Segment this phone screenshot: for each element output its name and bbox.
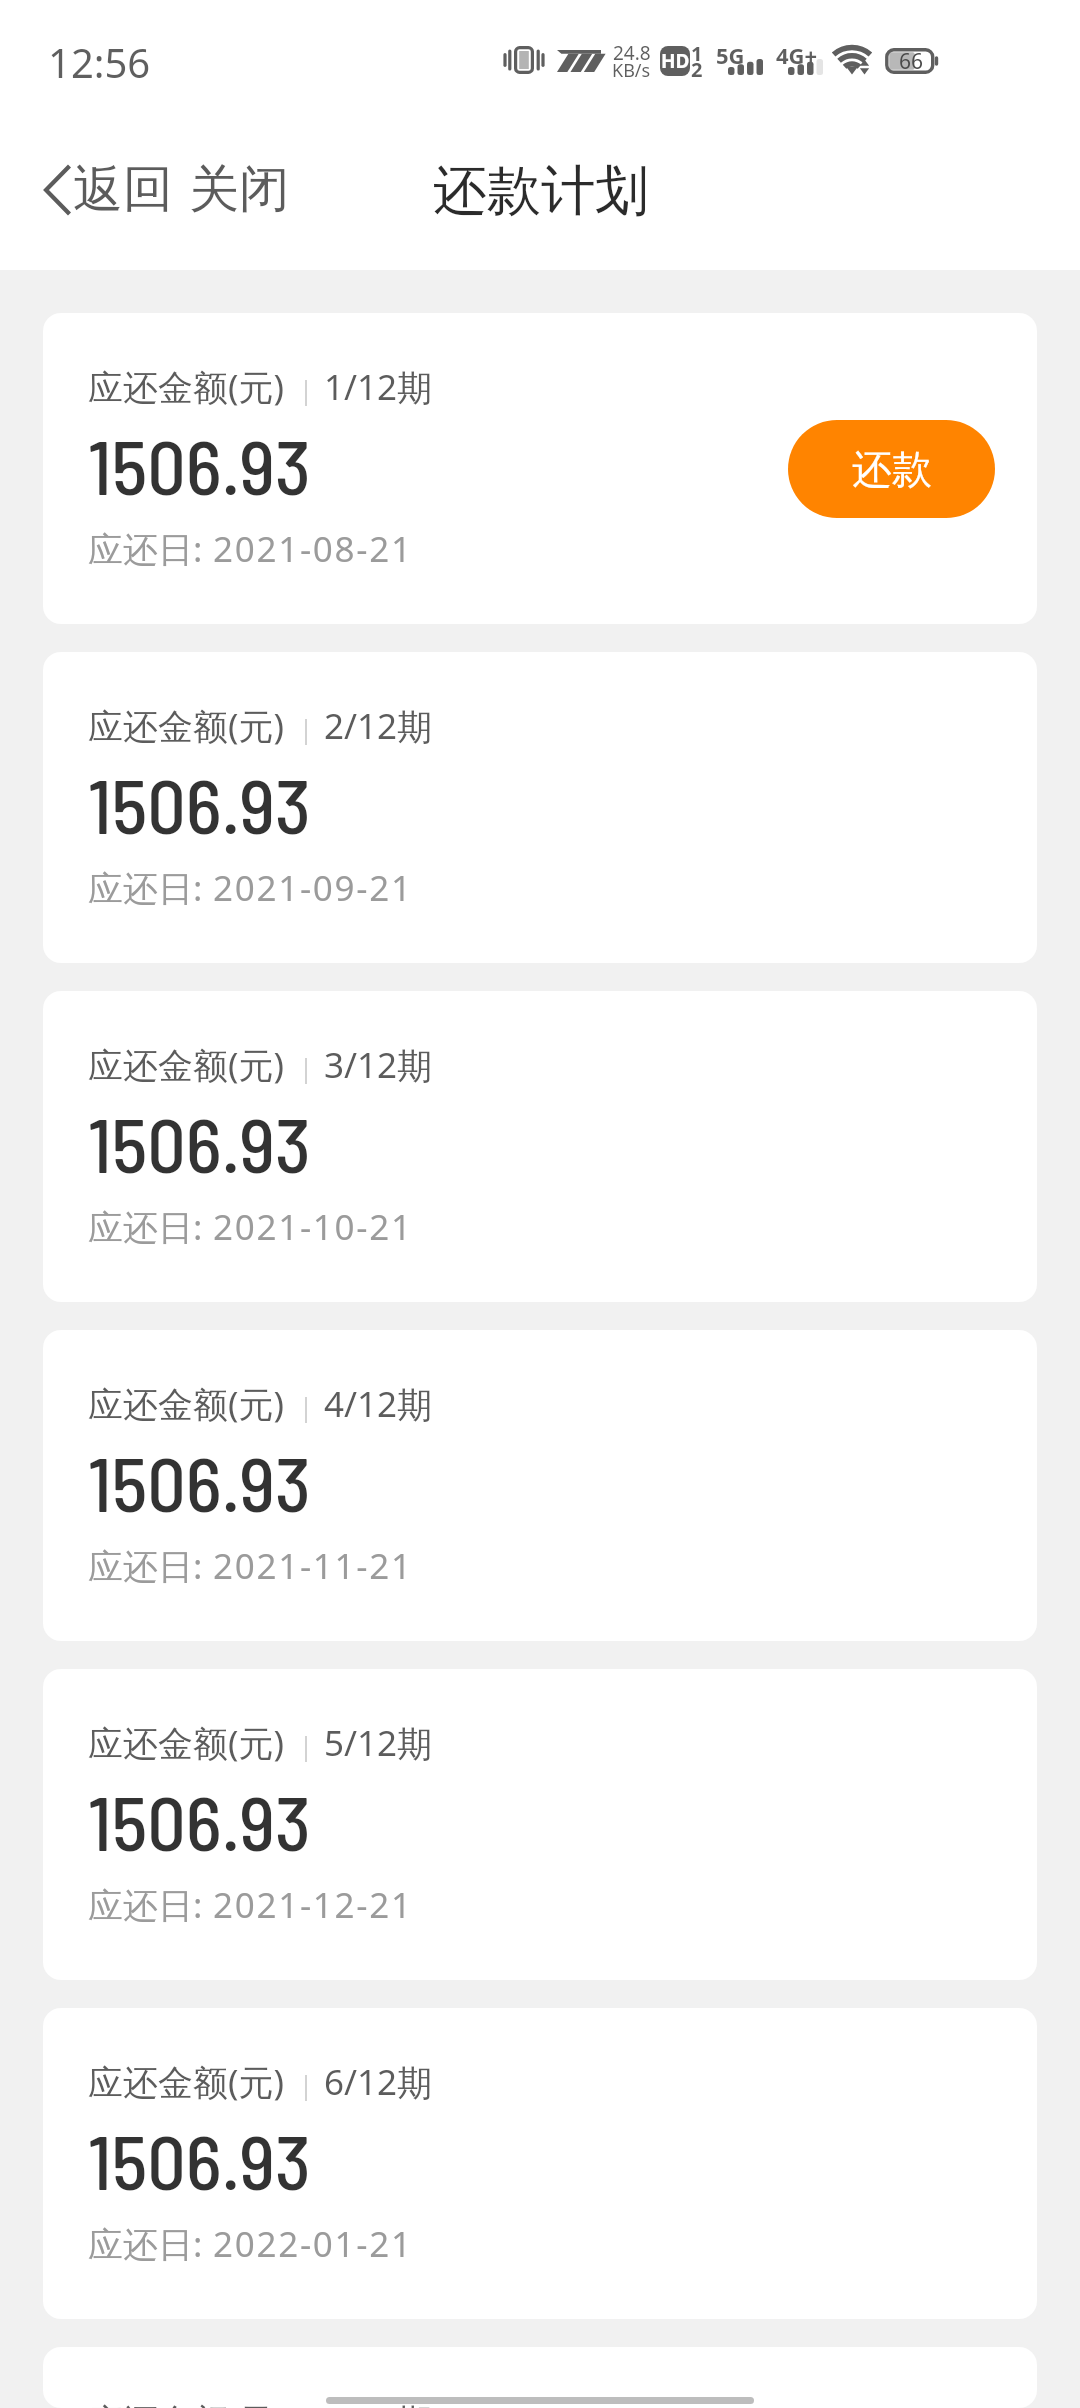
button[interactable]: 应还金额(元): [43, 2008, 1037, 2319]
staticText: 1/12期: [324, 363, 433, 411]
staticText: 2021-08-21: [213, 525, 413, 573]
staticText: 3/12期: [324, 1041, 433, 1089]
staticText: 还款: [852, 444, 932, 494]
staticText: HD: [661, 48, 690, 74]
staticText: 关闭: [189, 158, 289, 221]
button[interactable]: 应还金额(元): [43, 1330, 1037, 1641]
staticText: 1506.93: [88, 1775, 311, 1866]
staticText: 4/12期: [324, 1380, 433, 1428]
staticText: 应还金额(元): [88, 1041, 285, 1089]
staticText: 应还日:: [88, 1542, 203, 1590]
staticText: 1506.93: [88, 2114, 311, 2205]
staticText: 应还日:: [88, 525, 203, 573]
staticText: 应还日:: [88, 1203, 203, 1251]
staticText: 应还日:: [88, 2220, 203, 2268]
staticText: 1: [691, 40, 703, 67]
staticText: 应还金额(元): [88, 702, 285, 750]
staticText: 7/12期: [324, 2397, 433, 2408]
button[interactable]: 应还金额(元): [43, 652, 1037, 963]
button[interactable]: 应还金额(元): [43, 313, 1037, 624]
button[interactable]: 还款: [788, 420, 995, 518]
staticText: 2021-11-21: [213, 1542, 413, 1590]
button[interactable]: 应还金额(元): [43, 991, 1037, 1302]
staticText: 2: [691, 56, 703, 83]
staticText: 返回: [73, 158, 173, 221]
staticText: 6/12期: [324, 2058, 433, 2106]
staticText: 12:56: [48, 35, 151, 89]
staticText: 2021-12-21: [213, 1881, 413, 1929]
staticText: 2021-09-21: [213, 864, 413, 912]
staticText: 应还金额(元): [88, 2058, 285, 2106]
staticText: 应还金额(元): [88, 363, 285, 411]
staticText: 1506.93: [88, 1097, 311, 1188]
staticText: 应还金额(元): [88, 2397, 285, 2408]
staticText: 应还日:: [88, 864, 203, 912]
staticText: 5/12期: [324, 1719, 433, 1767]
button[interactable]: 应还金额(元): [43, 2347, 1037, 2408]
staticText: 2/12期: [324, 702, 433, 750]
staticText: 66: [899, 47, 924, 73]
staticText: 5G: [716, 40, 745, 69]
staticText: KB/s: [612, 58, 651, 83]
staticText: 还款计划: [433, 157, 649, 225]
staticText: 应还金额(元): [88, 1380, 285, 1428]
staticText: 2021-10-21: [213, 1203, 413, 1251]
button[interactable]: 应还金额(元): [43, 1669, 1037, 1980]
staticText: 1506.93: [88, 419, 311, 510]
button[interactable]: 关闭: [177, 152, 301, 227]
staticText: 应还日:: [88, 1881, 203, 1929]
staticText: 1506.93: [88, 758, 311, 849]
staticText: 24.8: [613, 40, 651, 66]
staticText: 4G+: [776, 40, 818, 69]
button[interactable]: 返回: [32, 152, 185, 227]
staticText: 2022-01-21: [213, 2220, 413, 2268]
staticText: 1506.93: [88, 1436, 311, 1527]
staticText: 应还金额(元): [88, 1719, 285, 1767]
